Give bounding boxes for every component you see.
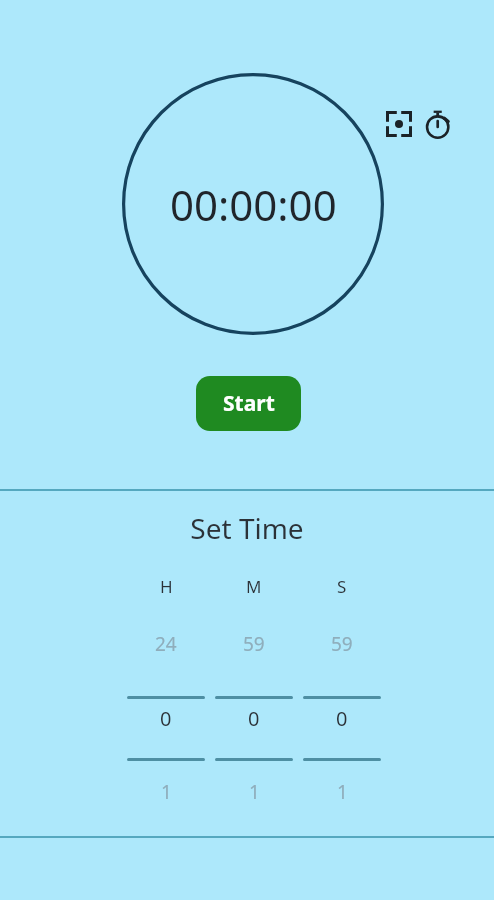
button[interactable]: 0	[210, 705, 298, 731]
button[interactable]	[122, 684, 210, 710]
button[interactable]: Center focus	[384, 109, 414, 139]
button[interactable]: 24	[122, 631, 210, 657]
button[interactable]: S	[298, 573, 386, 599]
staticText: 59	[331, 631, 353, 657]
button[interactable]	[298, 746, 386, 772]
staticText: Set Time	[0, 509, 494, 547]
button[interactable]: Stopwatch	[422, 108, 454, 140]
staticText: M	[246, 575, 262, 598]
staticText: H	[160, 575, 173, 598]
button[interactable]: 1	[298, 779, 386, 805]
staticText: 00:00:00	[170, 176, 337, 233]
staticText: 24	[155, 631, 177, 657]
staticText: 1	[337, 779, 348, 805]
button[interactable]	[210, 746, 298, 772]
button[interactable]: H	[122, 573, 210, 599]
staticText: 1	[249, 779, 260, 805]
staticText: S	[337, 575, 347, 598]
button[interactable]: 59	[298, 631, 386, 657]
staticText: 59	[243, 631, 265, 657]
button[interactable]	[122, 746, 210, 772]
button[interactable]: 0	[122, 705, 210, 731]
button[interactable]: 59	[210, 631, 298, 657]
button[interactable]: 1	[122, 779, 210, 805]
button[interactable]: 1	[210, 779, 298, 805]
staticText: 0	[160, 705, 172, 731]
staticText: 0	[336, 705, 348, 731]
staticText: 0	[248, 705, 260, 731]
staticText: 1	[161, 779, 172, 805]
button[interactable]	[298, 684, 386, 710]
staticText: Start	[223, 389, 275, 418]
button[interactable]: M	[210, 573, 298, 599]
button[interactable]: 0	[298, 705, 386, 731]
button[interactable]	[210, 684, 298, 710]
button[interactable]: Start	[196, 376, 301, 431]
